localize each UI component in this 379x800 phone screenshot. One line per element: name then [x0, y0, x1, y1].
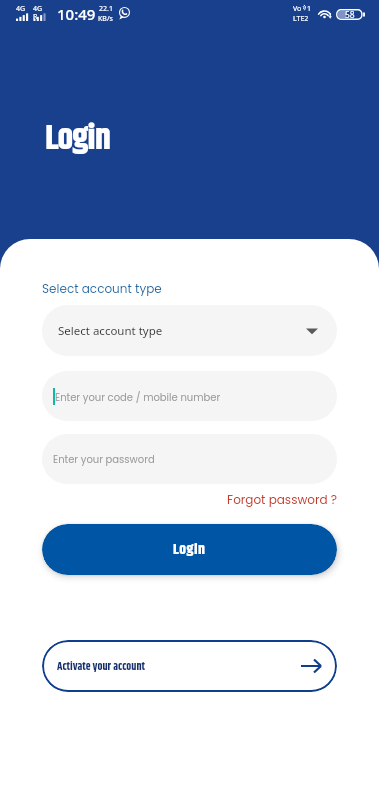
staticText: 4G: [33, 4, 43, 14]
staticText: 1: [307, 4, 312, 14]
staticText: Select account type: [42, 280, 162, 297]
button[interactable]: Select account type: [42, 305, 337, 356]
staticText: R: [33, 12, 38, 22]
staticText: KB/s: [98, 14, 113, 24]
staticText: Select account type: [58, 323, 163, 339]
staticText: Enter your code / mobile number: [55, 390, 221, 404]
button[interactable]: Enter your code / mobile number: [42, 371, 337, 421]
button[interactable]: Forgot password ?: [0, 491, 337, 508]
staticText: 58: [345, 9, 355, 20]
staticText: 10:49: [57, 4, 96, 24]
button[interactable]: Activate your account: [42, 640, 337, 692]
button[interactable]: Enter your password: [42, 434, 337, 484]
staticText: Enter your password: [53, 452, 155, 466]
button[interactable]: Login: [42, 524, 337, 575]
staticText: LTE2: [293, 14, 309, 24]
other: Go: [301, 658, 321, 674]
staticText: Login: [45, 112, 110, 166]
staticText: 22.1: [99, 4, 113, 14]
staticText: 4G: [16, 4, 26, 14]
other: Open account type list: [306, 325, 318, 337]
staticText: Activate your account: [57, 658, 145, 675]
staticText: Login: [173, 538, 206, 561]
staticText: Vo: [293, 4, 302, 14]
